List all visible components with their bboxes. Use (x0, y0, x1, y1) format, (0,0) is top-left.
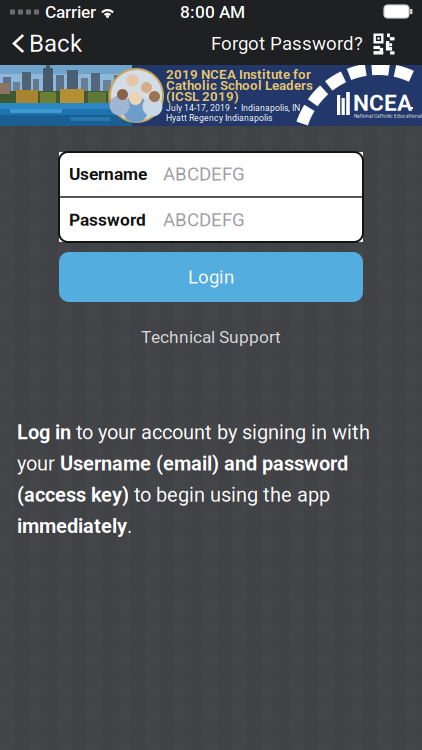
button[interactable]: Login (59, 252, 363, 302)
staticText: Hyatt Regency Indianapolis (166, 113, 272, 123)
staticText: 8:00 AM (180, 2, 245, 22)
staticText: Carrier (45, 2, 96, 22)
staticText: ABCDEFG (163, 163, 245, 185)
staticText: Technical Support (141, 327, 281, 347)
button[interactable]: Technical Support (111, 320, 311, 354)
staticText: ABCDEFG (163, 209, 245, 231)
staticText: Catholic School Leaders (166, 78, 313, 93)
staticText: Forgot Password? (211, 33, 363, 54)
staticText: 2019 NCEA Institute for (166, 67, 311, 82)
staticText: (ICSL 2019) (166, 89, 239, 104)
staticText: NCEA (353, 90, 412, 116)
staticText: Login (188, 266, 234, 288)
button[interactable]: Forgot Password? (0, 24, 422, 65)
button[interactable]: Scan QR code (0, 24, 422, 65)
staticText: Back (29, 29, 82, 57)
staticText: Username (69, 164, 147, 184)
staticText: Log in to your account by signing in wit… (17, 421, 370, 538)
button[interactable]: Back (0, 24, 422, 65)
staticText: National Catholic Educational Associatio… (354, 113, 422, 119)
staticText: July 14-17, 2019 • Indianapolis, IN (166, 103, 300, 113)
staticText: Password (69, 210, 146, 230)
